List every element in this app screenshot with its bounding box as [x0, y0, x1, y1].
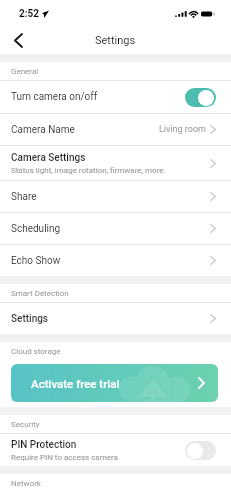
staticText: Camera Name: [11, 124, 75, 136]
button[interactable]: Turn camera on/off: [185, 88, 216, 107]
staticText: Living room: [159, 124, 206, 135]
button[interactable]: Camera Settings: [0, 146, 231, 180]
staticText: Settings: [95, 34, 136, 47]
button[interactable]: Settings: [0, 303, 231, 334]
button[interactable]: PIN Protection: [0, 434, 231, 466]
staticText: Camera Settings: [11, 152, 86, 164]
staticText: Smart Detection: [11, 289, 69, 298]
staticText: General: [11, 67, 39, 76]
staticText: Cloud storage: [11, 347, 61, 356]
staticText: Network: [11, 479, 41, 488]
button[interactable]: Echo Show: [0, 245, 231, 276]
staticText: Share: [11, 191, 37, 203]
staticText: PIN Protection: [11, 439, 77, 451]
staticText: Settings: [11, 313, 49, 325]
button[interactable]: Back: [0, 27, 36, 54]
staticText: 2:52: [19, 8, 40, 20]
staticText: Echo Show: [11, 255, 61, 267]
button[interactable]: Turn camera on/off: [0, 81, 231, 113]
staticText: Status light, image rotation, firmware, …: [11, 166, 166, 175]
button[interactable]: Activate free trial: [11, 364, 218, 402]
staticText: Require PIN to access camera: [11, 453, 118, 462]
button[interactable]: Scheduling: [0, 213, 231, 244]
staticText: Activate free trial: [31, 377, 120, 390]
button[interactable]: Camera Name: [0, 114, 231, 145]
staticText: Turn camera on/off: [11, 91, 98, 103]
staticText: Security: [11, 420, 40, 429]
button[interactable]: Share: [0, 181, 231, 212]
staticText: Scheduling: [11, 223, 61, 235]
button[interactable]: PIN Protection: [185, 441, 216, 460]
